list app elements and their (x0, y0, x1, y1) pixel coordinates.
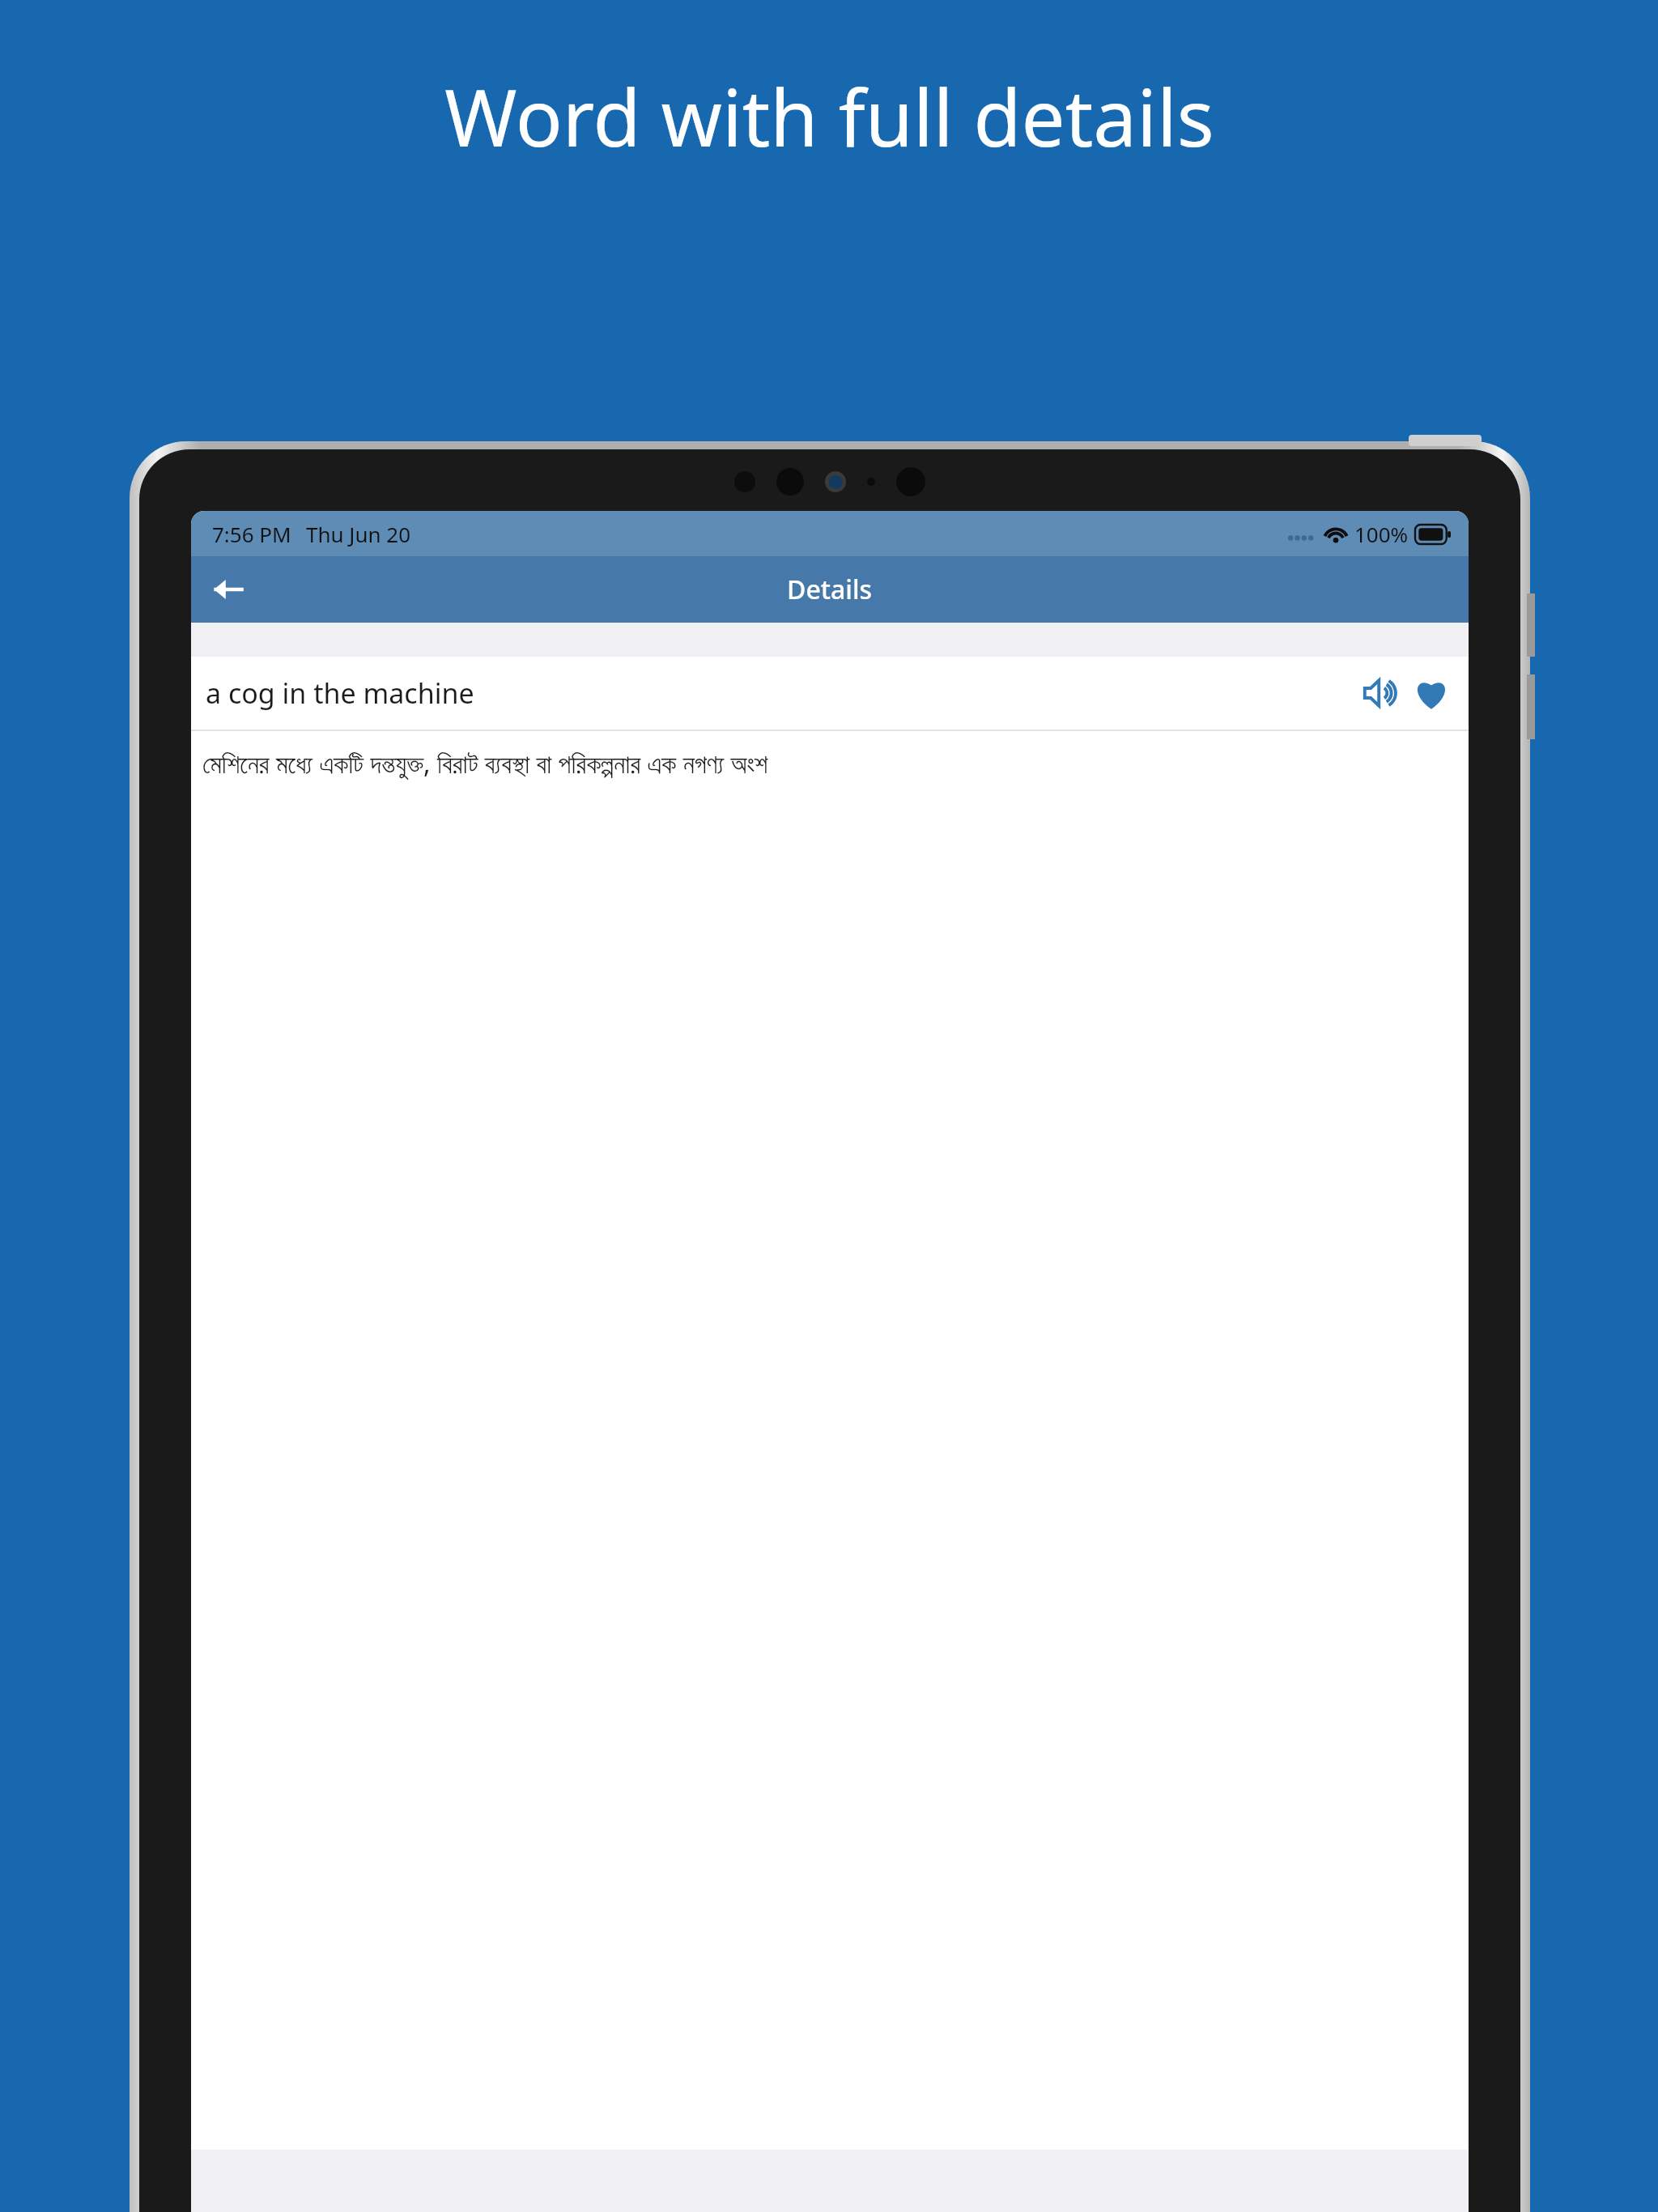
staticText: a cog in the machine (206, 674, 474, 712)
staticText: Details (787, 572, 873, 607)
button[interactable]: Pronounce (1358, 670, 1404, 716)
staticText: মেশিনের মধ্যে একটি দন্তযুক্ত, বিরাট ব্যব… (202, 746, 768, 781)
staticText: 7:56 PM (212, 520, 291, 548)
button[interactable]: Back (199, 560, 257, 619)
button[interactable]: a cog in the machine (191, 657, 1469, 730)
staticText: Word with full details (444, 63, 1214, 169)
staticText: 100% (1354, 520, 1409, 548)
button[interactable]: Favourite (1409, 670, 1454, 716)
staticText: Thu Jun 20 (306, 520, 411, 548)
